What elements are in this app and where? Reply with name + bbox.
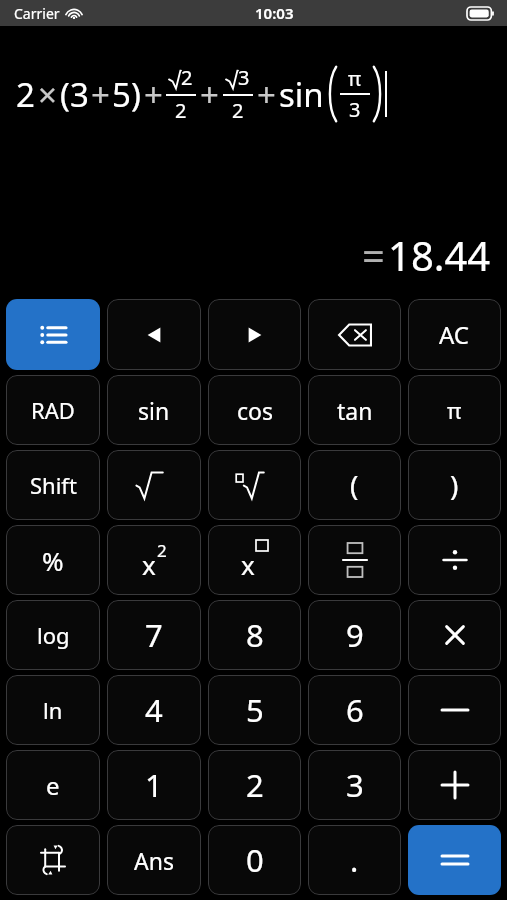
staticText: 3: [349, 96, 361, 123]
staticText: %: [42, 543, 64, 578]
button[interactable]: e: [6, 750, 100, 820]
staticText: tan: [337, 395, 373, 426]
staticText: π: [447, 395, 462, 425]
button[interactable]: RAD: [6, 375, 100, 445]
staticText: 1: [145, 764, 163, 806]
button[interactable]: %: [6, 525, 100, 595]
staticText: +: [257, 72, 276, 117]
button[interactable]: AC: [408, 299, 501, 370]
staticText: 9: [346, 614, 364, 656]
staticText: 2: [16, 72, 35, 117]
staticText: sin: [138, 395, 170, 426]
button[interactable]: 3: [308, 750, 401, 820]
staticText: +: [144, 72, 163, 117]
button[interactable]: 2: [208, 750, 301, 820]
staticText: ): [131, 72, 141, 117]
staticText: 3: [238, 64, 250, 91]
button[interactable]: Equals: [408, 825, 501, 895]
staticText: =: [362, 228, 385, 282]
button[interactable]: 0: [208, 825, 301, 895]
staticText: x: [241, 547, 255, 582]
button[interactable]: Square root: [107, 450, 201, 520]
staticText: ln: [43, 695, 63, 725]
button[interactable]: Rotate: [6, 825, 100, 895]
staticText: 3: [70, 72, 89, 117]
staticText: RAD: [31, 395, 75, 425]
button[interactable]: Multiply: [408, 600, 501, 670]
staticText: 2: [175, 97, 187, 124]
button[interactable]: cos: [208, 375, 301, 445]
staticText: 3: [346, 764, 364, 806]
button[interactable]: π: [408, 375, 501, 445]
staticText: ×: [38, 72, 57, 117]
button[interactable]: ln: [6, 675, 100, 745]
staticText: 5: [246, 689, 264, 731]
staticText: log: [37, 620, 70, 650]
staticText: 7: [145, 614, 163, 656]
staticText: .: [350, 839, 359, 881]
staticText: Shift: [30, 470, 77, 500]
button[interactable]: ): [408, 450, 501, 520]
button[interactable]: Move cursor right: [208, 299, 301, 370]
button[interactable]: N-th root: [208, 450, 301, 520]
staticText: (: [350, 466, 359, 504]
staticText: AC: [439, 318, 470, 351]
button[interactable]: Plus: [408, 750, 501, 820]
staticText: (: [60, 72, 70, 117]
staticText: x: [142, 547, 156, 582]
button[interactable]: 4: [107, 675, 201, 745]
button[interactable]: Backspace: [308, 299, 401, 370]
button[interactable]: x squared: [107, 525, 201, 595]
staticText: e: [46, 769, 60, 802]
staticText: ): [450, 466, 459, 504]
button[interactable]: 1: [107, 750, 201, 820]
staticText: 10:03: [255, 3, 294, 23]
staticText: Carrier: [14, 4, 60, 23]
button[interactable]: History: [6, 299, 100, 370]
staticText: 4: [145, 689, 163, 731]
staticText: 18.44: [388, 228, 491, 282]
button[interactable]: Shift: [6, 450, 100, 520]
staticText: 2: [246, 764, 264, 806]
staticText: +: [91, 72, 110, 117]
button[interactable]: 5: [208, 675, 301, 745]
button[interactable]: 9: [308, 600, 401, 670]
staticText: 2: [232, 97, 244, 124]
staticText: 5: [112, 72, 131, 117]
button[interactable]: Divide: [408, 525, 501, 595]
button[interactable]: .: [308, 825, 401, 895]
button[interactable]: Move cursor left: [107, 299, 201, 370]
button[interactable]: tan: [308, 375, 401, 445]
button[interactable]: 6: [308, 675, 401, 745]
button[interactable]: 7: [107, 600, 201, 670]
staticText: Ans: [134, 845, 174, 876]
button[interactable]: x to the power: [208, 525, 301, 595]
button[interactable]: Minus: [408, 675, 501, 745]
button[interactable]: Fraction: [308, 525, 401, 595]
staticText: +: [200, 72, 219, 117]
button[interactable]: 8: [208, 600, 301, 670]
staticText: 8: [246, 614, 264, 656]
button[interactable]: Ans: [107, 825, 201, 895]
staticText: 2: [181, 64, 193, 91]
button[interactable]: log: [6, 600, 100, 670]
staticText: π: [348, 65, 362, 92]
staticText: 2: [157, 539, 167, 562]
button[interactable]: (: [308, 450, 401, 520]
button[interactable]: sin: [107, 375, 201, 445]
staticText: sin: [279, 72, 324, 117]
staticText: 6: [346, 689, 364, 731]
staticText: 0: [246, 839, 264, 881]
staticText: cos: [237, 395, 273, 426]
